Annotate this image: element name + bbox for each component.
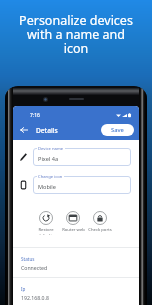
staticText: 192.168.0.8 [21, 294, 49, 301]
button[interactable]: Change icon [33, 176, 131, 194]
staticText: Device name [38, 146, 64, 152]
staticText: Change icon [38, 174, 63, 180]
button[interactable]: Ip [13, 278, 139, 305]
staticText: Mobile [38, 183, 56, 191]
staticText: Router web page [62, 227, 85, 235]
staticText: Save [111, 126, 124, 134]
button[interactable]: Status [13, 248, 139, 277]
staticText: Details [36, 126, 58, 135]
button[interactable]: Check ports [87, 211, 113, 233]
staticText: Connected [21, 264, 48, 271]
staticText: Restore defaults [38, 227, 54, 235]
button[interactable]: Save [101, 124, 134, 136]
button[interactable]: Router web page [60, 211, 86, 235]
staticText: Personalize devices with a name and icon [0, 12, 152, 57]
staticText: 7:16 [30, 112, 40, 119]
button[interactable]: Restore defaults [33, 211, 59, 235]
button[interactable]: Device name [33, 148, 131, 166]
staticText: Pixel 4a [38, 155, 59, 163]
button[interactable]: Back [17, 123, 31, 137]
staticText: Check ports [88, 227, 112, 233]
staticText: Status [21, 256, 35, 262]
staticText: Ip [21, 286, 26, 292]
